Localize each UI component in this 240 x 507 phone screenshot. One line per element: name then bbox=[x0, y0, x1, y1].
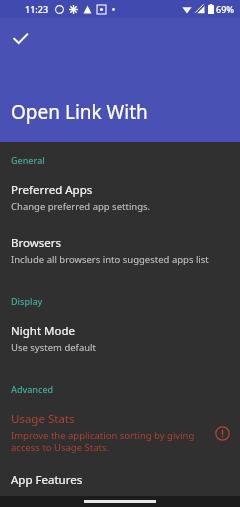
staticText: Night Mode bbox=[11, 323, 75, 339]
staticText: General bbox=[11, 154, 45, 166]
staticText: App Features bbox=[11, 472, 83, 488]
staticText: Improve the application sorting by givin… bbox=[11, 429, 212, 454]
button[interactable]: Night Mode bbox=[0, 316, 240, 361]
staticText: 11:23 bbox=[25, 3, 49, 15]
staticText: Use system default bbox=[11, 341, 96, 354]
staticText: Browsers bbox=[11, 235, 62, 251]
staticText: Advanced bbox=[11, 383, 54, 395]
staticText: Preferred Apps bbox=[11, 182, 93, 198]
staticText: 69% bbox=[216, 3, 234, 15]
button[interactable]: Preferred Apps bbox=[0, 175, 240, 220]
staticText: Include all browsers into suggested apps… bbox=[11, 253, 209, 266]
button[interactable]: Usage Stats bbox=[0, 404, 240, 461]
staticText: Usage Stats bbox=[11, 411, 75, 427]
button[interactable]: Confirm bbox=[0, 18, 40, 58]
other: Warning: permission required bbox=[212, 423, 232, 443]
button[interactable]: Browsers bbox=[0, 228, 240, 273]
button[interactable]: App Features bbox=[0, 465, 240, 496]
staticText: Display bbox=[11, 295, 43, 307]
staticText: Change preferred app settings. bbox=[11, 200, 151, 213]
staticText: Open Link With bbox=[11, 99, 148, 125]
